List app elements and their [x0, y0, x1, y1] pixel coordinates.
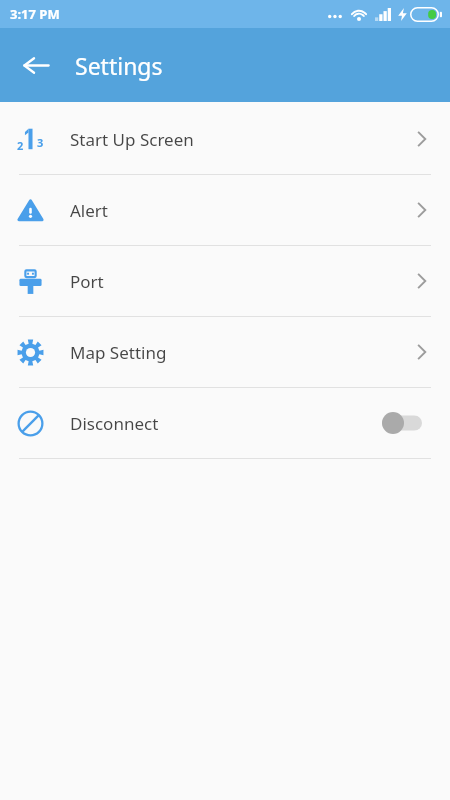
staticText: Settings — [75, 50, 163, 81]
staticText: Map Setting — [70, 341, 409, 364]
staticText: Port — [70, 270, 409, 293]
button[interactable]: Port — [0, 246, 450, 316]
staticText: Disconnect — [70, 412, 379, 435]
staticText: 3:17 PM — [10, 5, 60, 23]
staticText: 3 — [37, 135, 44, 150]
button[interactable]: Disconnect — [0, 388, 450, 458]
button[interactable]: Map Setting — [0, 317, 450, 387]
button[interactable]: Back — [11, 40, 61, 90]
staticText: Alert — [70, 199, 409, 222]
button[interactable]: Alert — [0, 175, 450, 245]
staticText: Start Up Screen — [70, 128, 409, 151]
staticText: 2 — [17, 138, 24, 153]
button[interactable]: 2 — [0, 104, 450, 174]
button[interactable]: Disconnect toggle — [379, 406, 433, 440]
